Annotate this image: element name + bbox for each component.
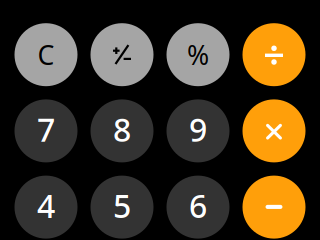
- staticText: 6: [189, 184, 207, 227]
- button[interactable]: Divide: [242, 23, 305, 86]
- staticText: C: [37, 37, 54, 72]
- button[interactable]: 6: [166, 176, 229, 239]
- button[interactable]: Subtract: [242, 176, 305, 239]
- staticText: %: [187, 37, 209, 72]
- staticText: 8: [113, 108, 131, 151]
- button[interactable]: Plus minus: [90, 23, 153, 86]
- button[interactable]: C: [14, 23, 77, 86]
- button[interactable]: 7: [14, 99, 77, 162]
- button[interactable]: 4: [14, 176, 77, 239]
- staticText: 5: [113, 184, 131, 227]
- button[interactable]: 5: [90, 176, 153, 239]
- button[interactable]: 9: [166, 99, 229, 162]
- button[interactable]: 8: [90, 99, 153, 162]
- staticText: 7: [37, 108, 55, 151]
- button[interactable]: %: [166, 23, 229, 86]
- staticText: 4: [37, 184, 55, 227]
- button[interactable]: Multiply: [242, 99, 305, 162]
- staticText: 9: [189, 108, 207, 151]
